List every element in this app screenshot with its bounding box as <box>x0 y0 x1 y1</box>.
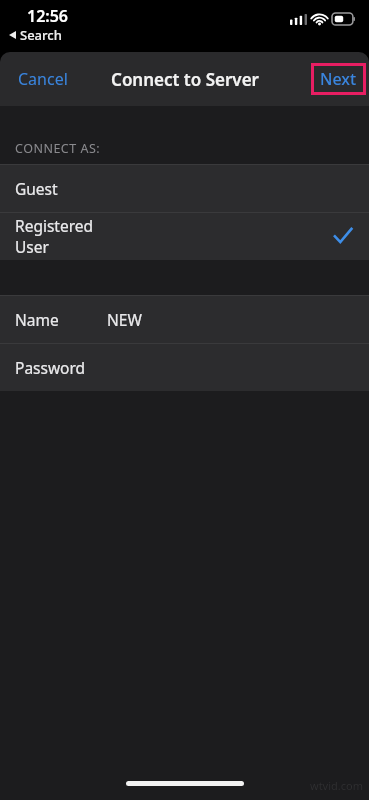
staticText: Guest <box>15 178 58 199</box>
staticText: Password <box>15 357 86 378</box>
staticText: Search <box>20 26 62 44</box>
button[interactable]: Registered User <box>0 212 369 260</box>
button[interactable]: Back to Search <box>6 25 65 45</box>
staticText: Cancel <box>18 68 68 90</box>
staticText: CONNECT AS: <box>15 140 101 157</box>
staticText: Connect to Server <box>111 68 259 91</box>
button[interactable]: Password <box>0 343 369 391</box>
button[interactable]: Guest <box>0 164 369 212</box>
staticText: Name <box>15 309 59 330</box>
other: Selected <box>334 227 352 245</box>
button[interactable]: Cancel <box>0 56 86 102</box>
button[interactable]: Name <box>0 295 369 343</box>
staticText: NEW <box>107 309 142 330</box>
staticText: Registered User <box>15 215 107 257</box>
staticText: Next <box>320 68 357 90</box>
button[interactable]: Next <box>311 63 366 95</box>
staticText: wtvid.com <box>310 778 363 793</box>
staticText: 12:56 <box>27 5 69 27</box>
